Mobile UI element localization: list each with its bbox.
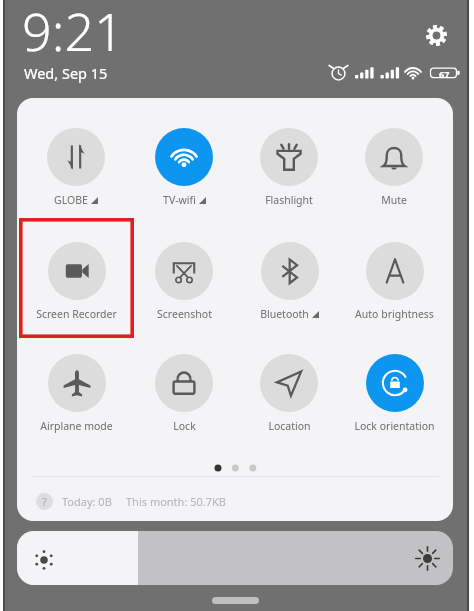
staticText: TV-wifi <box>163 193 196 207</box>
button[interactable]: Screen Recorder <box>22 242 130 340</box>
button[interactable]: Location <box>235 354 343 452</box>
staticText: Screenshot <box>157 307 212 321</box>
staticText: Mute <box>381 193 407 207</box>
button[interactable]: Settings <box>422 21 450 49</box>
staticText: Lock <box>173 419 196 433</box>
staticText: ? <box>42 494 47 509</box>
staticText: 67 <box>439 68 450 78</box>
staticText: 9:21 <box>22 0 124 66</box>
staticText: Lock orientation <box>354 419 435 433</box>
button[interactable]: TV-wifi <box>130 128 238 226</box>
staticText: Location <box>268 419 311 433</box>
staticText: Auto brightness <box>355 307 434 321</box>
staticText: Today: 0B <box>62 494 112 509</box>
button[interactable]: Flashlight <box>235 128 343 226</box>
staticText: Flashlight <box>265 193 313 207</box>
staticText: Screen Recorder <box>36 307 117 321</box>
button[interactable]: Lock <box>130 354 238 452</box>
staticText: GLOBE <box>54 193 88 207</box>
button[interactable]: Bluetooth <box>235 242 343 340</box>
button[interactable]: Screenshot <box>130 242 238 340</box>
staticText: Wed, Sep 15 <box>24 63 108 83</box>
button[interactable]: Brightness <box>17 531 453 585</box>
button[interactable]: Airplane mode <box>22 354 130 452</box>
button[interactable]: GLOBE <box>22 128 130 226</box>
staticText: This month: 50.7KB <box>126 494 226 509</box>
button[interactable]: Auto brightness <box>340 242 448 340</box>
button[interactable]: Mute <box>340 128 448 226</box>
button[interactable]: Data usage <box>36 490 226 512</box>
staticText: Bluetooth <box>260 307 309 321</box>
staticText: Airplane mode <box>40 419 113 433</box>
button[interactable]: Lock orientation <box>340 354 448 452</box>
